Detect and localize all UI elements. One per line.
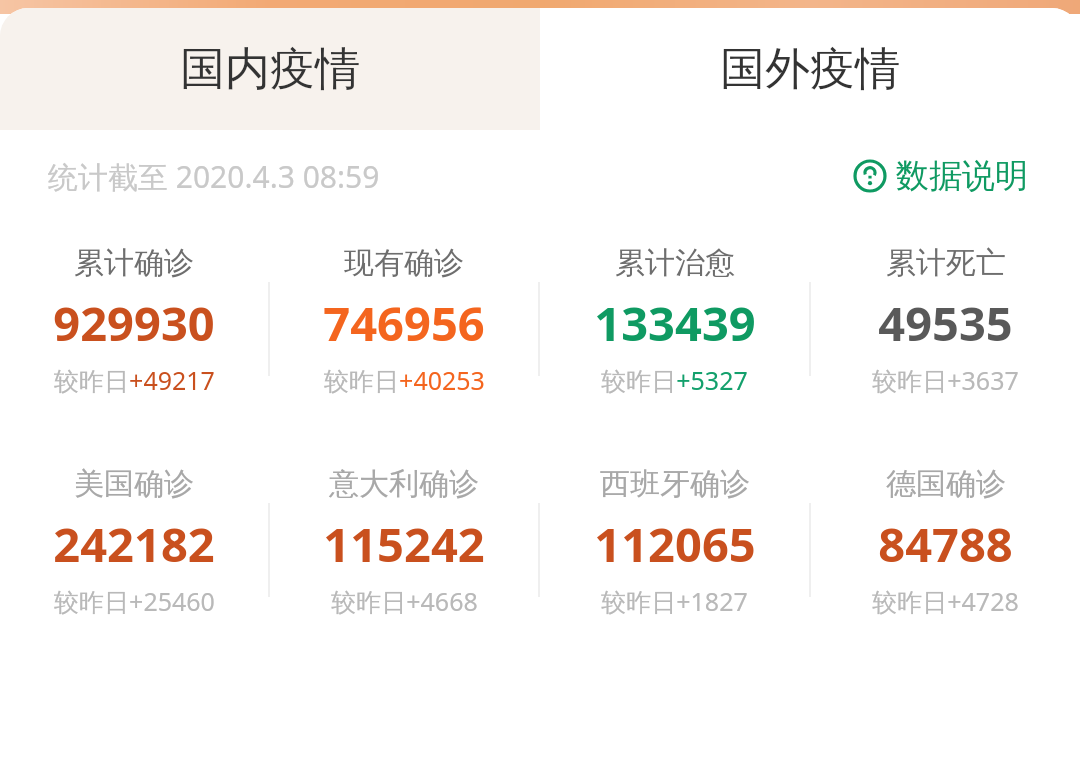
button[interactable]: 累计确诊 (0, 244, 268, 397)
staticText: 德国确诊 (886, 465, 1006, 503)
staticText: 美国确诊 (74, 465, 194, 503)
staticText: 累计死亡 (886, 244, 1006, 282)
staticText: 较昨日+49217 (54, 363, 215, 397)
staticText: 929930 (53, 291, 215, 355)
staticText: 242182 (53, 512, 215, 576)
button[interactable]: 意大利确诊 (270, 465, 538, 618)
staticText: 数据说明 (896, 155, 1028, 197)
staticText: 较昨日+4728 (872, 584, 1019, 618)
staticText: 112065 (594, 512, 756, 576)
staticText: 国外疫情 (720, 41, 900, 98)
staticText: 现有确诊 (344, 244, 464, 282)
staticText: 西班牙确诊 (600, 465, 750, 503)
staticText: 746956 (323, 291, 485, 355)
button[interactable]: 国内疫情 (0, 8, 540, 130)
staticText: 133439 (594, 291, 756, 355)
staticText: 较昨日+40253 (324, 363, 485, 397)
button[interactable]: 现有确诊 (270, 244, 538, 397)
button[interactable]: 美国确诊 (0, 465, 268, 618)
staticText: 较昨日+5327 (601, 363, 748, 397)
staticText: 较昨日+1827 (601, 584, 748, 618)
other: 数据说明 (853, 159, 887, 193)
staticText: 115242 (323, 512, 485, 576)
staticText: 意大利确诊 (329, 465, 479, 503)
staticText: 较昨日+4668 (331, 584, 478, 618)
staticText: 国内疫情 (180, 41, 360, 98)
staticText: 较昨日+25460 (54, 584, 215, 618)
staticText: 较昨日+3637 (872, 363, 1019, 397)
button[interactable]: 西班牙确诊 (540, 465, 809, 618)
button[interactable]: 德国确诊 (811, 465, 1080, 618)
staticText: 统计截至 2020.4.3 08:59 (48, 156, 380, 197)
staticText: 累计确诊 (74, 244, 194, 282)
button[interactable]: 国外疫情 (540, 8, 1080, 130)
staticText: 49535 (878, 291, 1013, 355)
staticText: 累计治愈 (615, 244, 735, 282)
button[interactable]: 数据说明 (849, 151, 1032, 201)
button[interactable]: 累计治愈 (540, 244, 809, 397)
staticText: 84788 (878, 512, 1013, 576)
button[interactable]: 累计死亡 (811, 244, 1080, 397)
